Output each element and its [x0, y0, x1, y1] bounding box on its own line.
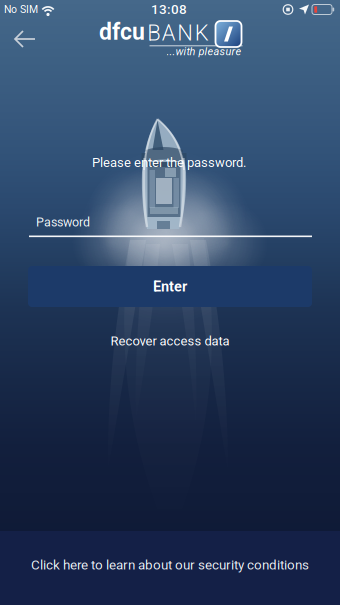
staticText: Click here to learn about our security c… — [31, 557, 309, 573]
button[interactable]: Password — [29, 215, 312, 237]
button[interactable]: Click here to learn about our security c… — [0, 531, 340, 605]
staticText: Password — [36, 215, 90, 229]
staticText: ...with pleasure — [166, 45, 241, 58]
staticText: No SIM — [4, 3, 38, 16]
staticText: Enter — [153, 278, 187, 295]
staticText: BANK — [147, 20, 209, 46]
staticText: Recover access data — [110, 333, 229, 349]
button[interactable]: Recover access data — [110, 333, 229, 349]
button[interactable]: Enter — [28, 266, 312, 307]
staticText: 13:08 — [151, 2, 187, 17]
staticText: Please enter the password. — [92, 155, 246, 170]
button[interactable]: Back — [5, 21, 45, 57]
staticText: dfcu — [99, 18, 145, 45]
